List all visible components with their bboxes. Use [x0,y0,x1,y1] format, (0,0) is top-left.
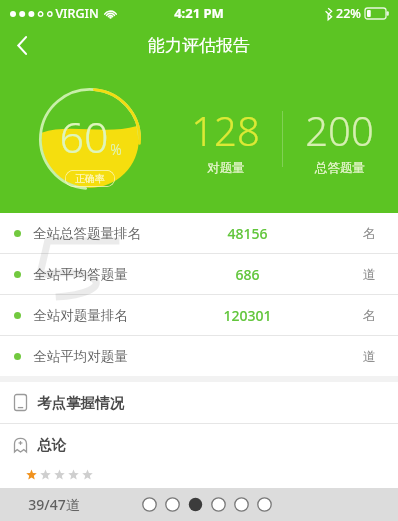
staticText: 考点掌握情况 [37,394,124,412]
staticText: 全站平均答题量 [33,266,128,283]
button[interactable]: 总论 [0,424,398,465]
staticText: 名 [363,307,376,323]
staticText: VIRGIN [55,5,99,22]
staticText: 道 [363,348,376,364]
button[interactable]: Question 4 [207,493,230,516]
staticText: 全站总答题量排名 [33,225,141,242]
button[interactable]: 全站平均答题量 [0,254,398,294]
staticText: 道 [363,266,376,282]
button[interactable]: 全站总答题量排名 [0,213,398,253]
staticText: 对题量 [207,160,245,176]
button[interactable]: 全站平均对题量 [0,336,398,376]
staticText: 48156 [227,224,268,243]
staticText: % [110,140,122,159]
button[interactable]: 考点掌握情况 [0,382,398,423]
button[interactable]: Question 6 [253,493,276,516]
staticText: 总论 [37,436,66,454]
staticText: 正确率 [75,172,105,185]
button[interactable]: 全站对题量排名 [0,295,398,335]
staticText: 686 [235,265,260,284]
staticText: 120301 [223,306,272,325]
staticText: 全站平均对题量 [33,348,128,365]
button[interactable]: Question 5 [230,493,253,516]
staticText: 200 [305,103,374,157]
staticText: 全站对题量排名 [33,307,128,324]
staticText: 能力评估报告 [148,35,250,56]
button[interactable]: Question 1 [138,493,161,516]
button[interactable]: Question 3 [184,493,207,516]
staticText: 4:21 PM [174,4,224,22]
button[interactable]: Question 2 [161,493,184,516]
staticText: 22% [336,5,361,22]
staticText: 总答题量 [315,160,365,176]
staticText: 名 [363,225,376,241]
staticText: 60 [59,107,109,166]
button[interactable]: Back [0,26,44,64]
staticText: 128 [191,103,260,157]
staticText: 39/47道 [28,495,80,514]
